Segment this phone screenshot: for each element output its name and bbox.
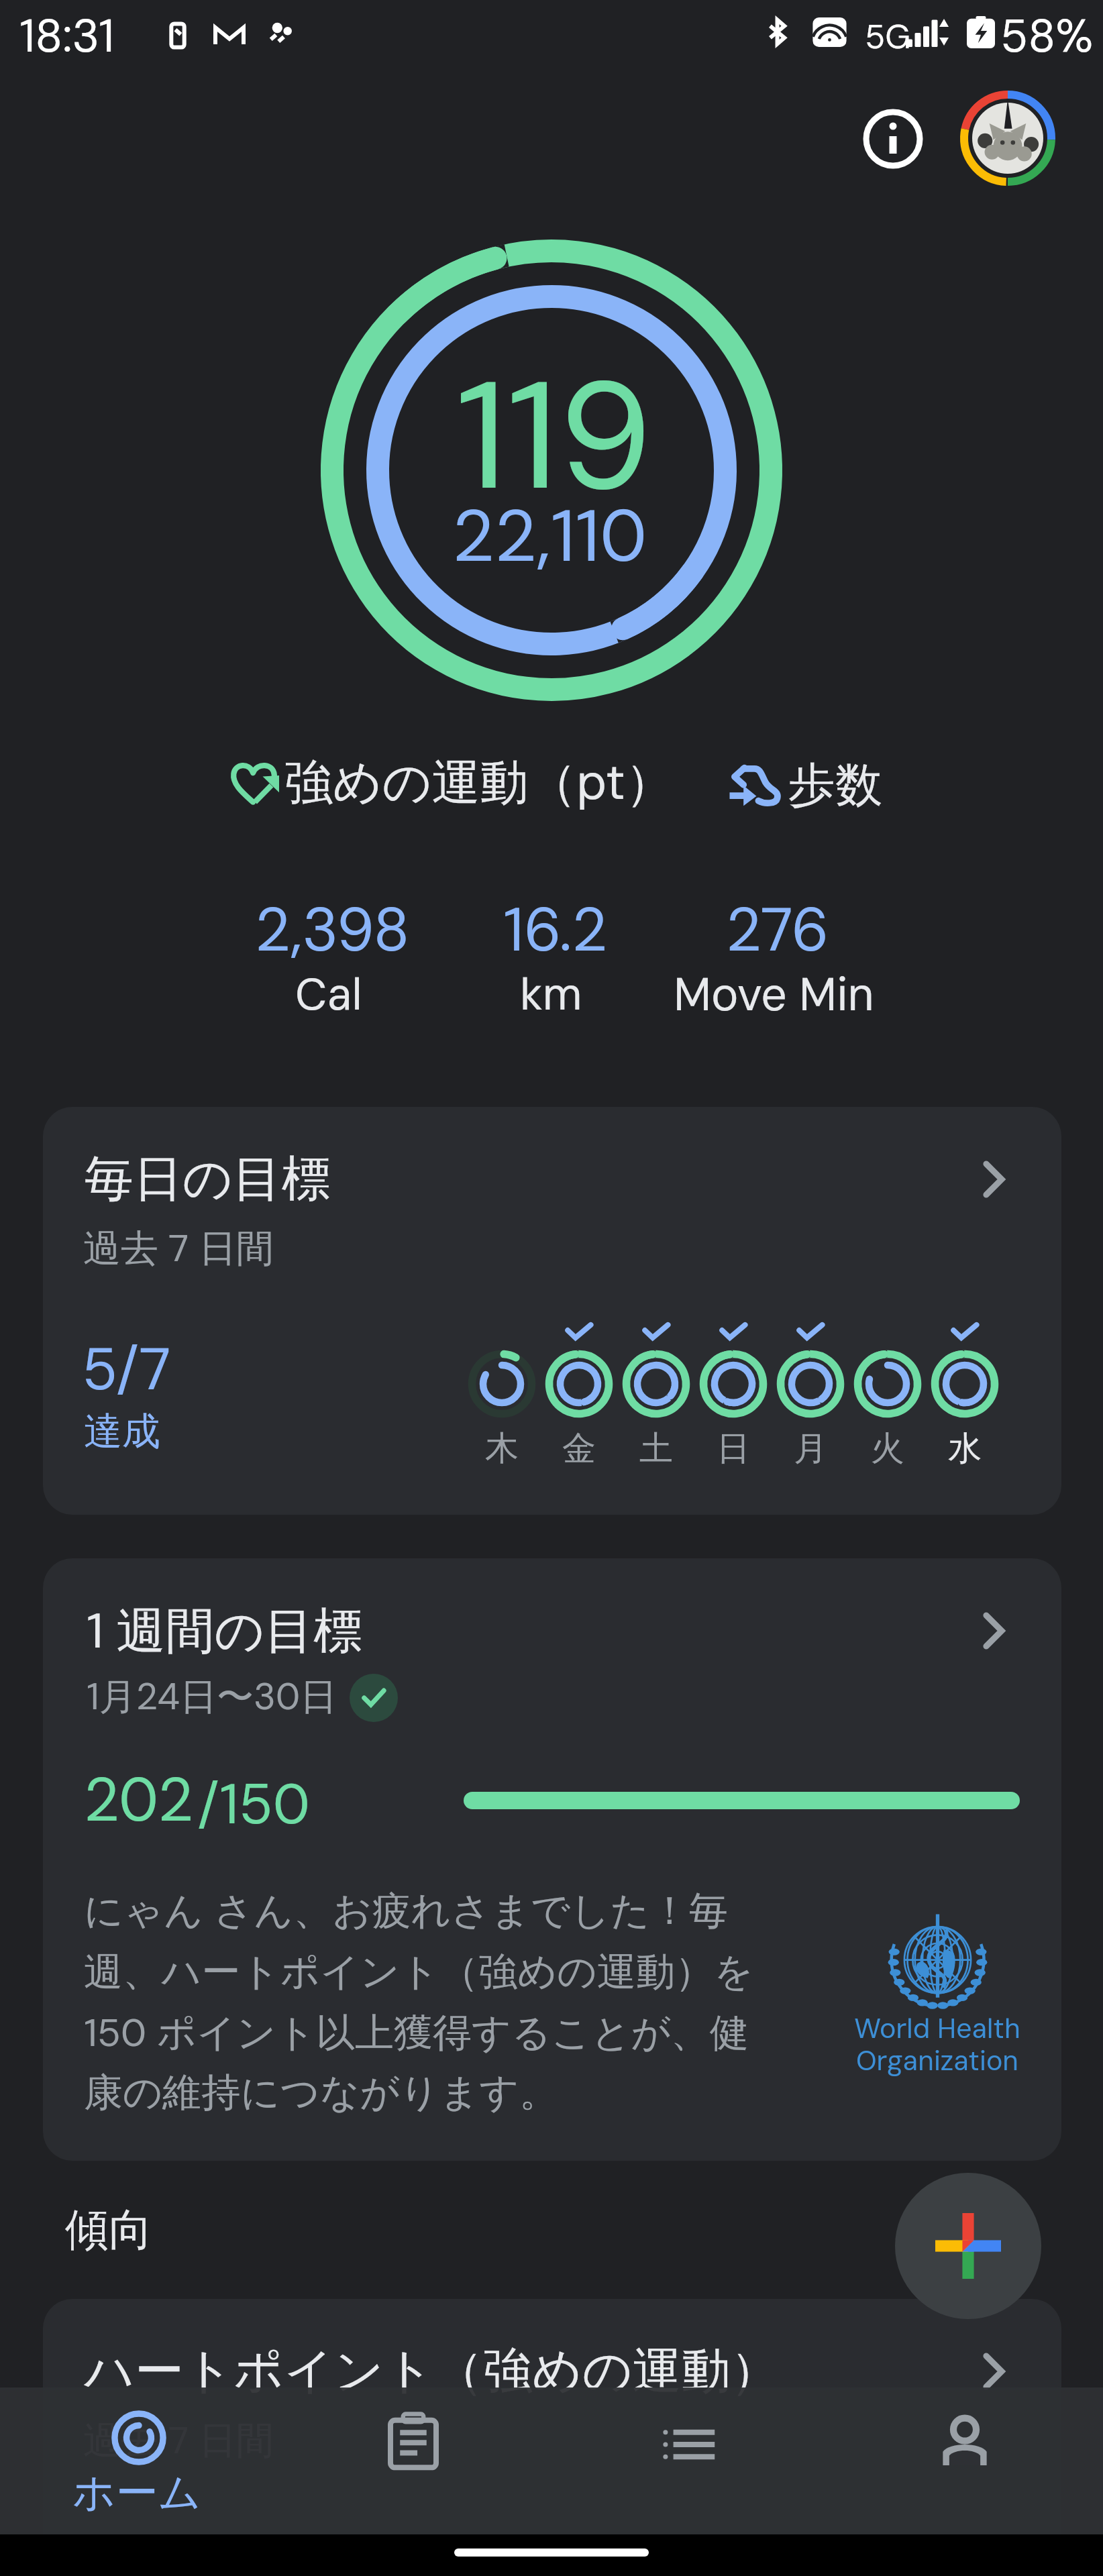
staticText: 5G: [865, 15, 911, 58]
staticText: 276: [726, 891, 829, 969]
staticText: Cal: [295, 965, 362, 1024]
button[interactable]: 1 週間の目標: [43, 1558, 1061, 2161]
staticText: 58%: [1000, 7, 1094, 66]
button[interactable]: Add activity: [895, 2173, 1041, 2319]
button[interactable]: ハートポイント（強めの運動）: [43, 2299, 1061, 2567]
staticText: 18:31: [19, 7, 115, 66]
staticText: 毎日の目標: [85, 1148, 331, 1210]
staticText: 月: [770, 1428, 851, 1470]
staticText: 119: [456, 339, 652, 535]
staticText: 火: [847, 1428, 928, 1470]
staticText: 2,398: [255, 891, 410, 969]
staticText: /150: [197, 1768, 310, 1841]
staticText: 5/7: [82, 1331, 171, 1408]
staticText: 歩数: [788, 756, 882, 815]
staticText: 金: [539, 1428, 619, 1470]
staticText: 1 週間の目標: [87, 1599, 363, 1663]
staticText: 傾向: [65, 2202, 152, 2257]
staticText: 水: [925, 1428, 1005, 1470]
staticText: 日: [693, 1428, 774, 1470]
staticText: にゃん さん、お疲れさまでした！毎週、ハートポイント（強めの運動）を 150 ポ…: [84, 1885, 755, 2117]
button[interactable]: Profile: [827, 2387, 1103, 2534]
staticText: ホーム: [30, 2466, 244, 2519]
button[interactable]: Browse: [551, 2387, 827, 2534]
staticText: 16.2: [503, 891, 608, 969]
staticText: 過去 7 日間: [83, 2416, 274, 2465]
staticText: 202: [84, 1761, 194, 1839]
staticText: World Health Organization: [833, 2010, 1041, 2078]
staticText: 木: [462, 1428, 542, 1470]
staticText: 土: [616, 1428, 696, 1470]
staticText: km: [520, 965, 582, 1024]
staticText: 過去 7 日間: [83, 1224, 274, 1273]
staticText: 22,110: [452, 490, 647, 583]
button[interactable]: Account: [959, 90, 1056, 186]
button[interactable]: 毎日の目標: [43, 1107, 1061, 1515]
staticText: 強めの運動（pt）: [284, 751, 674, 814]
staticText: 達成: [84, 1407, 160, 1456]
staticText: ハートポイント（強めの運動）: [85, 2341, 780, 2402]
button[interactable]: Journal: [276, 2387, 551, 2534]
staticText: 1月24日〜30日: [87, 1672, 337, 1721]
button[interactable]: ホーム: [0, 2387, 276, 2534]
staticText: Move Min: [674, 965, 874, 1025]
button[interactable]: Info: [856, 102, 930, 176]
